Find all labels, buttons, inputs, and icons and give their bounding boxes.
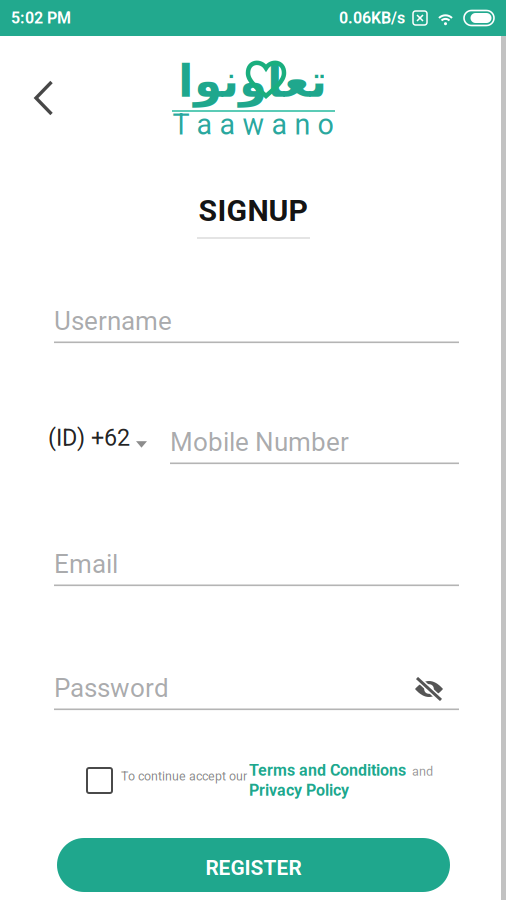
staticText: T a a w a n o [172, 108, 333, 142]
staticText: Password [54, 673, 169, 703]
button[interactable]: Back [21, 68, 66, 128]
staticText: تعاونوا [177, 55, 326, 107]
staticText: Username [54, 306, 172, 336]
staticText: Mobile Number [170, 427, 349, 457]
staticText: 5:02 PM [11, 9, 71, 27]
staticText: Privacy Policy [249, 781, 349, 800]
staticText: To continue accept our [121, 769, 247, 783]
staticText: Terms and Conditions [249, 761, 406, 780]
button[interactable]: Show password [414, 677, 444, 701]
staticText: Email [54, 549, 118, 579]
button[interactable]: Terms and Conditions [249, 761, 406, 780]
staticText: SIGNUP [198, 193, 307, 228]
button[interactable]: REGISTER [57, 838, 450, 892]
staticText: REGISTER [205, 856, 301, 880]
button[interactable]: (ID) +62 [48, 424, 147, 451]
button[interactable]: Privacy Policy [249, 781, 349, 800]
button[interactable]: Accept terms and conditions [87, 768, 112, 793]
staticText: (ID) +62 [48, 424, 130, 451]
staticText: 0.06KB/s [339, 9, 405, 27]
staticText: and [412, 764, 433, 779]
